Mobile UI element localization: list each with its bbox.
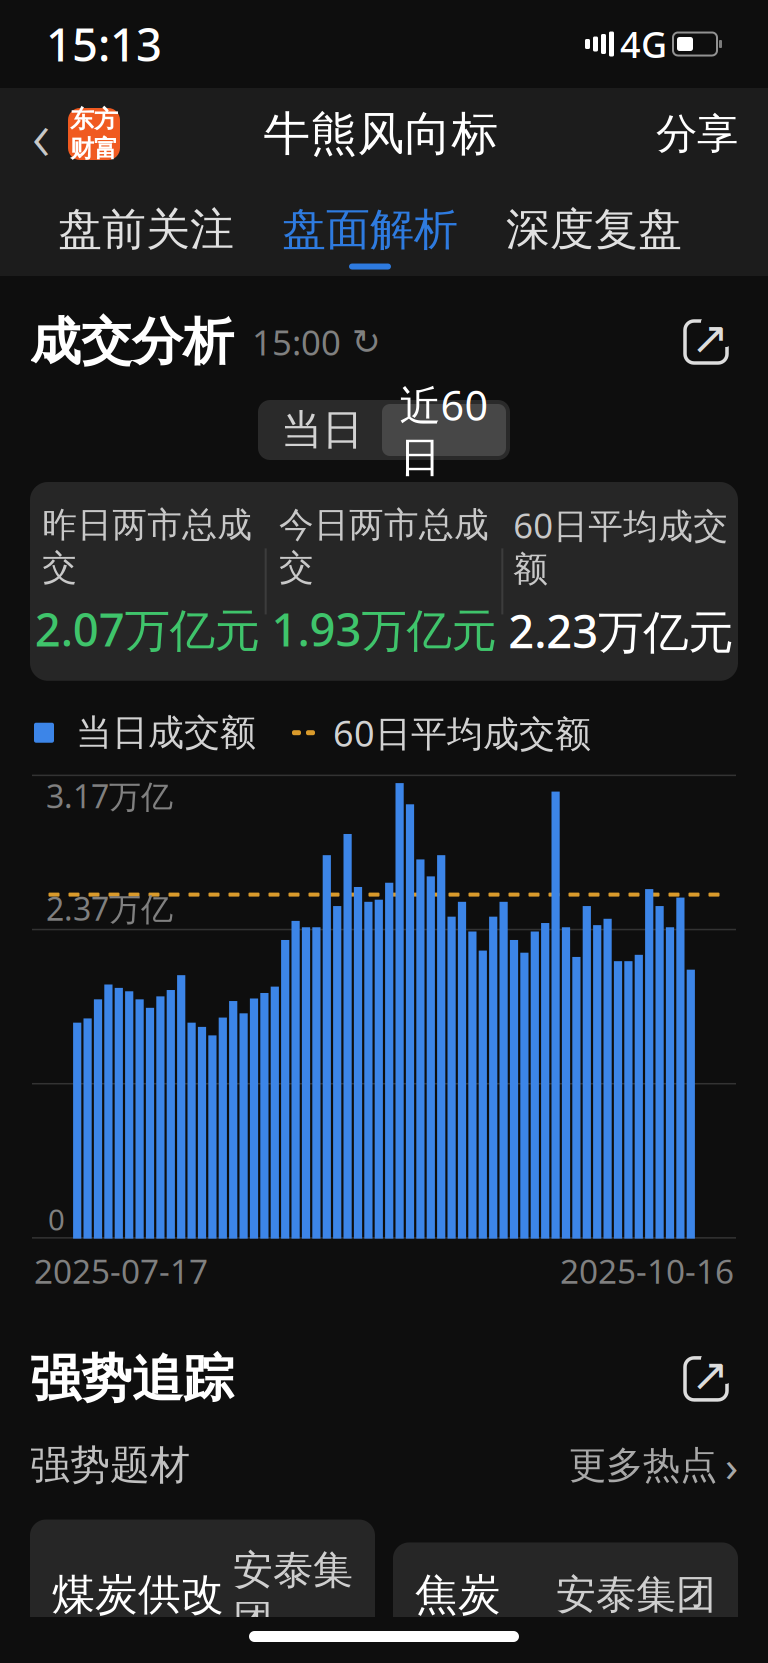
button[interactable]: 盘前关注 — [34, 178, 258, 269]
staticText: 2025-10-16 — [560, 1249, 734, 1293]
staticText: 当日 — [281, 405, 363, 455]
staticText: ↗ — [691, 1349, 729, 1401]
staticText: › — [725, 1437, 738, 1494]
staticText: 分享 — [656, 109, 738, 159]
staticText: 15:13 — [46, 14, 162, 74]
staticText: 2.23万亿元 — [508, 601, 733, 661]
staticText: 东方 财富 — [70, 104, 118, 163]
staticText: 60日平均成交额 — [315, 709, 591, 757]
button[interactable]: Open 成交分析 — [674, 310, 738, 374]
staticText: 1.93万亿元 — [271, 599, 496, 659]
staticText: 当日成交额 — [54, 711, 256, 755]
staticText: 深度复盘 — [506, 202, 682, 256]
staticText: 盘面解析 — [282, 202, 458, 256]
button[interactable]: 更多热点 — [569, 1437, 738, 1494]
staticText: 安泰集团 — [556, 1570, 716, 1619]
button[interactable]: Back — [14, 98, 68, 170]
staticText: 15:00 — [234, 319, 341, 365]
staticText: 4G — [620, 20, 667, 68]
staticText: 安泰集团 — [233, 1545, 353, 1644]
staticText: 煤炭供改 — [52, 1568, 224, 1621]
staticText: 强势题材 — [30, 1441, 190, 1490]
staticText: 更多热点 — [569, 1442, 717, 1488]
staticText: 3.17万亿 — [46, 775, 173, 817]
button[interactable]: 分享 — [642, 98, 752, 170]
staticText: 2.37万亿 — [46, 887, 173, 930]
staticText: 强势追踪 — [30, 1348, 234, 1410]
staticText: 牛熊风向标 — [263, 105, 498, 163]
staticText: 2.07万亿元 — [35, 599, 260, 659]
staticText: 0 — [48, 1200, 65, 1239]
staticText: 2025-07-17 — [34, 1249, 208, 1293]
button[interactable]: 深度复盘 — [482, 178, 706, 269]
button[interactable]: 盘面解析 — [258, 178, 482, 269]
staticText: 近60日 — [399, 377, 488, 483]
staticText: ↗ — [691, 312, 729, 364]
staticText: 60日平均成交额 — [513, 502, 728, 591]
staticText: 昨日两市总成交 — [42, 504, 252, 589]
staticText: ‹ — [32, 88, 50, 180]
button[interactable]: 焦炭 — [393, 1542, 738, 1663]
staticText: 成交分析 — [30, 311, 234, 373]
staticText: 今日两市总成交 — [279, 504, 489, 589]
button[interactable]: 当日 — [262, 404, 382, 456]
button[interactable]: 近60日 — [382, 404, 506, 456]
staticText: 盘前关注 — [58, 202, 234, 256]
staticText: ↻ — [341, 322, 381, 362]
button[interactable]: 煤炭供改 — [30, 1519, 375, 1663]
staticText: 焦炭 — [415, 1568, 501, 1621]
staticText: 2.64% — [415, 1633, 535, 1663]
button[interactable]: Open 强势追踪 — [674, 1347, 738, 1411]
